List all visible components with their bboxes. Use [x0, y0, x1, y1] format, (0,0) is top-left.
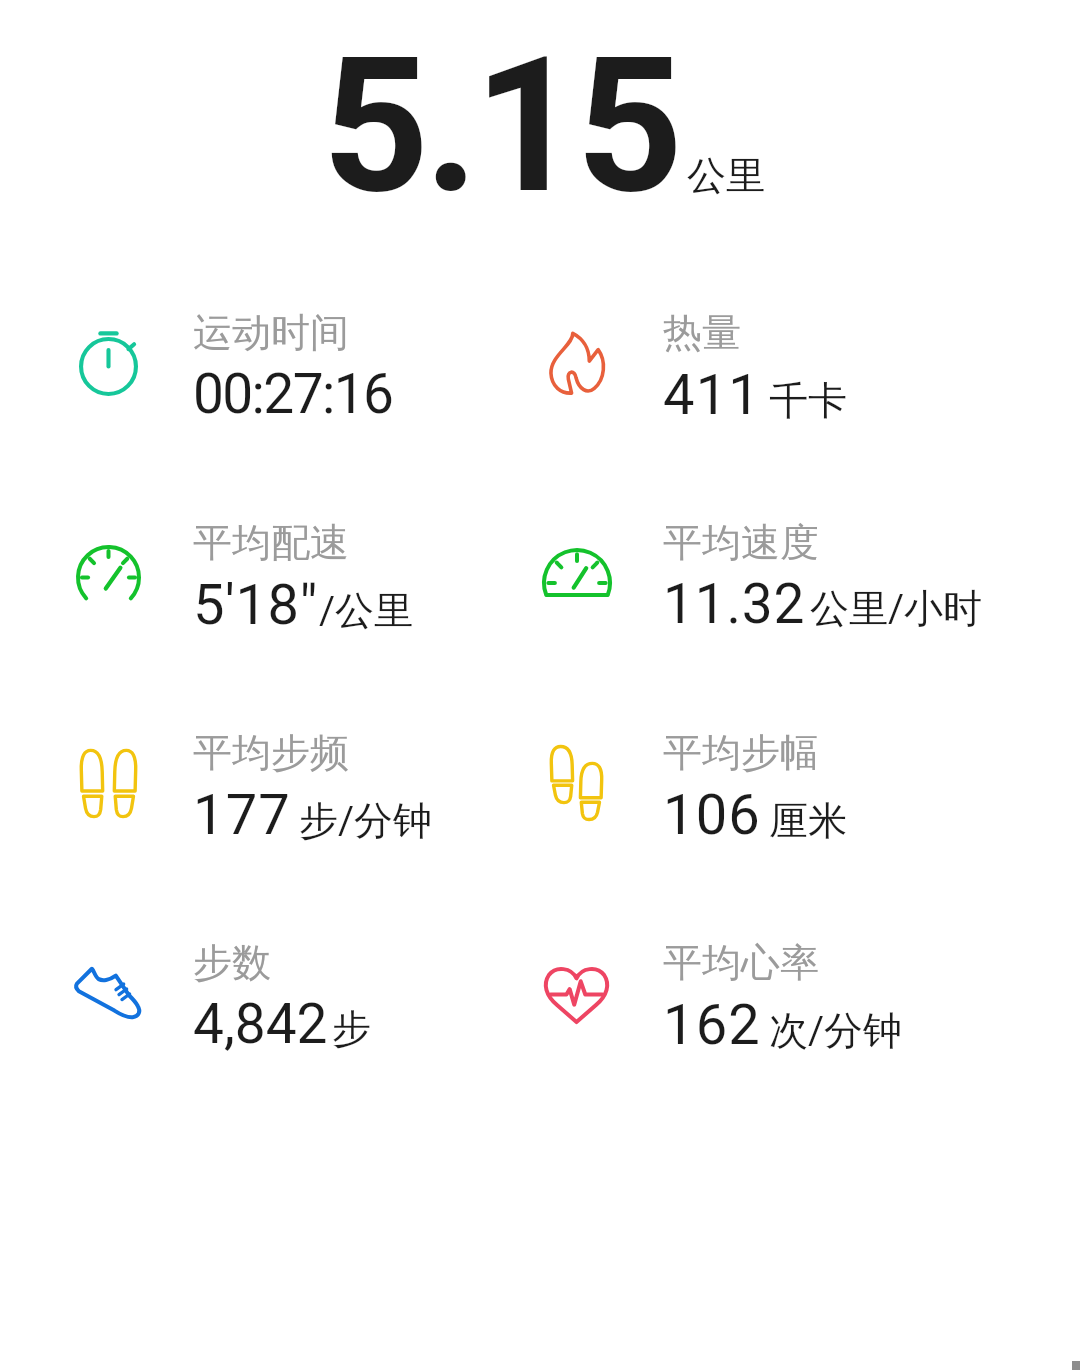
- button[interactable]: [50, 494, 470, 644]
- staticText: 平均配速: [193, 518, 349, 567]
- staticText: 次/分钟: [769, 1006, 903, 1055]
- staticText: 4,842: [193, 992, 328, 1056]
- staticText: 00:27:16: [193, 362, 393, 426]
- staticText: 步/分钟: [299, 796, 433, 845]
- button[interactable]: [50, 914, 470, 1064]
- button[interactable]: [520, 284, 940, 434]
- staticText: 平均速度: [663, 518, 819, 567]
- button[interactable]: [50, 704, 470, 854]
- button[interactable]: 平均配速: [70, 539, 147, 606]
- button[interactable]: 运动时间: [73, 325, 144, 402]
- staticText: 热量: [663, 308, 741, 357]
- staticText: 177: [193, 782, 292, 848]
- staticText: 11.32: [663, 572, 806, 636]
- staticText: 5'18": [193, 572, 319, 638]
- staticText: 106: [663, 782, 762, 848]
- staticText: 厘米: [769, 796, 847, 845]
- staticText: 步数: [193, 938, 271, 987]
- staticText: 5.15: [322, 17, 679, 236]
- staticText: 162: [663, 992, 762, 1058]
- button[interactable]: 5.15: [322, 17, 757, 236]
- staticText: 411: [663, 362, 762, 428]
- staticText: 公里/小时: [810, 584, 983, 633]
- button[interactable]: [520, 704, 940, 854]
- button[interactable]: [50, 284, 470, 434]
- staticText: 步: [332, 1004, 371, 1053]
- staticText: 平均步幅: [663, 728, 819, 777]
- button[interactable]: 平均步频: [75, 745, 142, 822]
- button[interactable]: [520, 494, 940, 644]
- staticText: 公里: [687, 151, 765, 200]
- button[interactable]: 步数: [70, 962, 146, 1025]
- staticText: 平均步频: [193, 728, 349, 777]
- staticText: 平均心率: [663, 938, 819, 987]
- button[interactable]: 热量: [542, 326, 613, 402]
- staticText: /公里: [319, 586, 414, 635]
- button[interactable]: 平均心率: [538, 957, 615, 1029]
- staticText: 运动时间: [193, 308, 349, 357]
- button[interactable]: 平均步幅: [545, 741, 608, 825]
- staticText: 千卡: [769, 376, 847, 425]
- button[interactable]: [520, 914, 940, 1064]
- button[interactable]: 平均速度: [536, 542, 618, 603]
